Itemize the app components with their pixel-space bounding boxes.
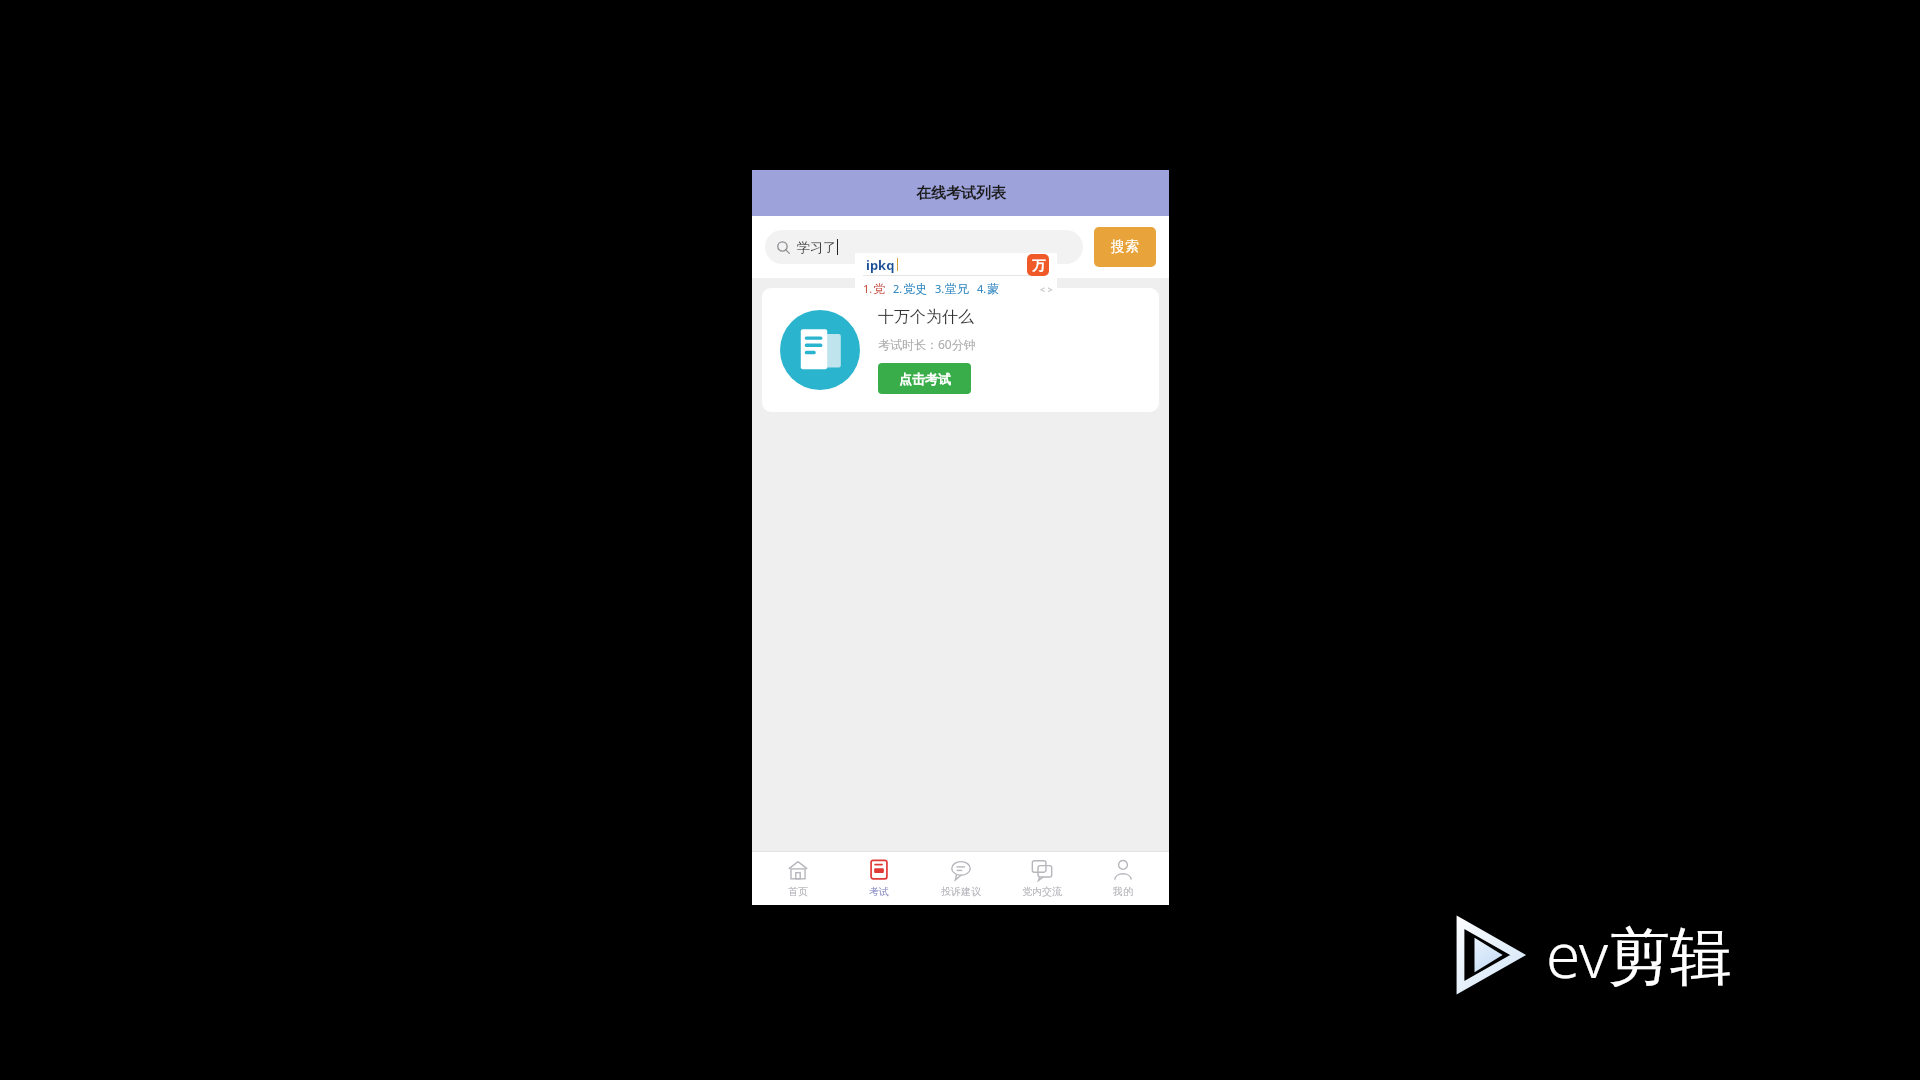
staticText: 3. bbox=[935, 281, 945, 296]
staticText: 点击考试 bbox=[899, 371, 951, 387]
staticText: < > bbox=[1040, 283, 1053, 295]
staticText: 首页 bbox=[788, 885, 808, 898]
button[interactable]: 搜索 bbox=[1094, 227, 1156, 267]
staticText: 4. bbox=[977, 281, 987, 296]
staticText: 蒙 bbox=[987, 281, 999, 296]
staticText: 搜索 bbox=[1111, 238, 1139, 256]
staticText: 万 bbox=[1032, 257, 1045, 273]
staticText: 在线考试列表 bbox=[916, 184, 1006, 203]
staticText: 考试时长：60分钟 bbox=[878, 336, 976, 352]
other: Party communication bbox=[1031, 859, 1053, 881]
button[interactable]: IME logo bbox=[1027, 254, 1049, 276]
button[interactable]: Complaints and suggestions bbox=[926, 852, 996, 905]
button[interactable]: My profile bbox=[1088, 852, 1158, 905]
staticText: 1. bbox=[863, 281, 873, 296]
button[interactable]: 点击考试 bbox=[878, 363, 971, 394]
staticText: 党内交流 bbox=[1022, 885, 1062, 898]
staticText: ipkq bbox=[866, 256, 895, 274]
button[interactable]: Exam document bbox=[762, 288, 1159, 412]
button[interactable]: Exams bbox=[844, 852, 914, 905]
other: Exams bbox=[868, 859, 890, 881]
staticText: 党 bbox=[873, 281, 885, 296]
other: Home bbox=[787, 859, 809, 881]
staticText: 堂兄 bbox=[945, 281, 969, 296]
other: Complaints and suggestions bbox=[950, 859, 972, 881]
other: My profile bbox=[1112, 859, 1134, 881]
staticText: 党史 bbox=[903, 281, 927, 296]
staticText: 投诉建议 bbox=[941, 885, 981, 898]
staticText: 2. bbox=[893, 281, 903, 296]
staticText: ev剪辑 bbox=[1546, 912, 1733, 997]
staticText: 十万个为什么 bbox=[878, 307, 974, 327]
button[interactable]: Home bbox=[763, 852, 833, 905]
button[interactable]: 3. bbox=[935, 281, 969, 296]
button[interactable]: 学习了 bbox=[765, 230, 1083, 264]
button[interactable]: 4. bbox=[977, 281, 999, 296]
button[interactable]: Party communication bbox=[1007, 852, 1077, 905]
staticText: 学习了 bbox=[797, 239, 836, 255]
other: Exam document bbox=[780, 310, 860, 390]
staticText: 考试 bbox=[869, 885, 889, 898]
button[interactable]: 2. bbox=[893, 281, 927, 296]
button[interactable]: 1. bbox=[863, 281, 885, 296]
staticText: 我的 bbox=[1113, 885, 1133, 898]
